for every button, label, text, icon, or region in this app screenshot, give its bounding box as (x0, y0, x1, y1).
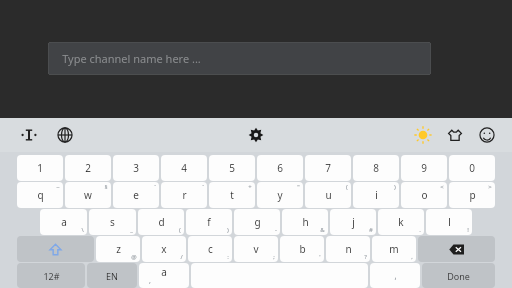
button[interactable]: , (370, 263, 420, 288)
staticText: : (227, 253, 229, 261)
staticText: o (421, 188, 428, 202)
button[interactable]: w (65, 182, 111, 208)
button[interactable]: 0 (449, 155, 495, 181)
button[interactable]: 12# (17, 263, 85, 288)
button[interactable]: 4 (161, 155, 207, 181)
staticText: e (133, 188, 139, 202)
staticText: \ (81, 226, 84, 234)
button[interactable]: p (449, 182, 495, 208)
button[interactable]: Emoji (476, 124, 498, 146)
button[interactable]: 3 (113, 155, 159, 181)
staticText: > (488, 183, 492, 191)
staticText: 8 (373, 161, 379, 175)
staticText: g (254, 215, 261, 229)
staticText: Type channel name here ... (62, 51, 201, 66)
button[interactable]: EN (87, 263, 137, 288)
staticText: ´ (154, 183, 156, 191)
button[interactable]: g (234, 209, 280, 235)
staticText: w (84, 188, 92, 202)
button[interactable]: a (139, 263, 189, 288)
button[interactable]: 9 (401, 155, 447, 181)
staticText: 9 (421, 161, 427, 175)
staticText: Done (447, 270, 470, 282)
button[interactable]: Done (422, 263, 495, 288)
button[interactable]: 1 (17, 155, 63, 181)
button[interactable]: b (280, 236, 324, 262)
button[interactable]: e (113, 182, 159, 208)
button[interactable]: l (426, 209, 472, 235)
staticText: ) (394, 183, 396, 191)
button[interactable]: 7 (305, 155, 351, 181)
button[interactable]: 2 (65, 155, 111, 181)
button[interactable]: c (188, 236, 232, 262)
button[interactable]: i (353, 182, 399, 208)
button[interactable]: d (138, 209, 184, 235)
staticText: ~ (56, 183, 60, 191)
button[interactable]: Type channel name here ... (48, 42, 431, 75)
button[interactable]: q (17, 182, 63, 208)
staticText: v (253, 242, 259, 256)
staticText: r (182, 188, 187, 202)
staticText: 2 (85, 161, 91, 175)
button[interactable]: n (326, 236, 370, 262)
staticText: z (116, 242, 121, 256)
staticText: ; (273, 253, 275, 261)
staticText: p (469, 188, 476, 202)
staticText: 7 (325, 161, 331, 175)
button[interactable]: t (209, 182, 255, 208)
staticText: u (325, 188, 332, 202)
staticText: y (277, 188, 283, 202)
staticText: c (208, 242, 213, 256)
staticText: d (158, 215, 165, 229)
staticText: 6 (277, 161, 283, 175)
staticText: ' (319, 253, 321, 261)
staticText: n (345, 242, 352, 256)
staticText: a (161, 265, 167, 279)
button[interactable]: Language (54, 124, 76, 146)
staticText: l (448, 215, 451, 229)
button[interactable]: v (234, 236, 278, 262)
staticText: ) (227, 226, 229, 234)
staticText: ` (202, 183, 204, 191)
button[interactable]: Text cursor (18, 124, 40, 146)
staticText: 12# (43, 270, 60, 282)
staticText: ( (346, 183, 348, 191)
staticText: & (320, 226, 325, 234)
button[interactable]: o (401, 182, 447, 208)
button[interactable]: 5 (209, 155, 255, 181)
button[interactable]: z (96, 236, 140, 262)
staticText: " (297, 183, 300, 191)
staticText: x (161, 242, 167, 256)
staticText: q (37, 188, 44, 202)
staticText: _ (130, 226, 133, 234)
staticText: ? (364, 253, 367, 261)
button[interactable]: Brightness (412, 124, 434, 146)
button[interactable]: m (372, 236, 416, 262)
button[interactable]: Theme (444, 124, 466, 146)
button[interactable]: a (40, 209, 87, 235)
button[interactable]: Settings (245, 124, 267, 146)
staticText: h (302, 215, 309, 229)
button[interactable]: 8 (353, 155, 399, 181)
button[interactable]: s (89, 209, 136, 235)
button[interactable]: f (186, 209, 232, 235)
staticText: t (230, 188, 234, 202)
staticText: @ (131, 253, 137, 261)
button[interactable]: x (142, 236, 186, 262)
button[interactable]: r (161, 182, 207, 208)
button[interactable]: u (305, 182, 351, 208)
button[interactable]: 6 (257, 155, 303, 181)
staticText: k (398, 215, 404, 229)
button[interactable]: y (257, 182, 303, 208)
button[interactable]: Shift (17, 236, 94, 262)
staticText: 4 (181, 161, 187, 175)
button[interactable]: j (330, 209, 376, 235)
button[interactable]: h (282, 209, 328, 235)
button[interactable]: k (378, 209, 424, 235)
staticText: , (411, 253, 413, 261)
staticText: . (419, 226, 421, 234)
button[interactable]: Backspace (418, 236, 495, 262)
staticText: ! (467, 226, 469, 234)
staticText: 1 (37, 161, 43, 175)
